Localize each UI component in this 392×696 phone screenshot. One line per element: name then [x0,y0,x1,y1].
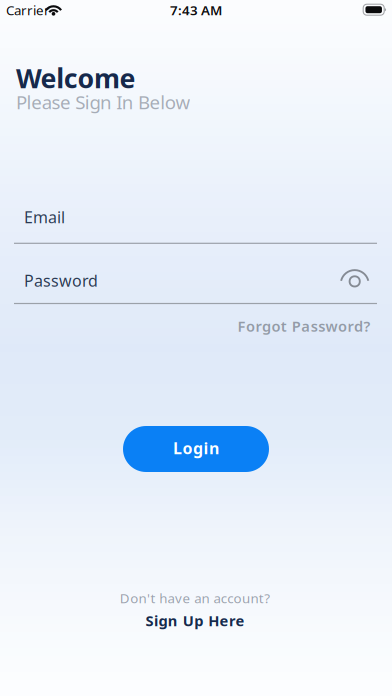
staticText: Please Sign In Below [16,90,190,114]
staticText: Don't have an account? [120,589,270,607]
staticText: Email [24,206,65,228]
staticText: Forgot Password? [238,316,370,336]
button[interactable]: Password [14,262,378,314]
staticText: 7:43 AM [170,1,222,19]
button[interactable]: Email [14,198,378,250]
button[interactable]: Sign Up Here [115,609,275,631]
staticText: Sign Up Here [145,611,244,630]
button[interactable] [338,265,372,299]
button[interactable]: Login [123,426,269,472]
staticText: Login [173,437,219,459]
staticText: Password [24,270,98,291]
staticText: Welcome [16,60,136,96]
button[interactable]: Forgot Password? [219,316,389,336]
staticText: Carrier [6,1,50,19]
